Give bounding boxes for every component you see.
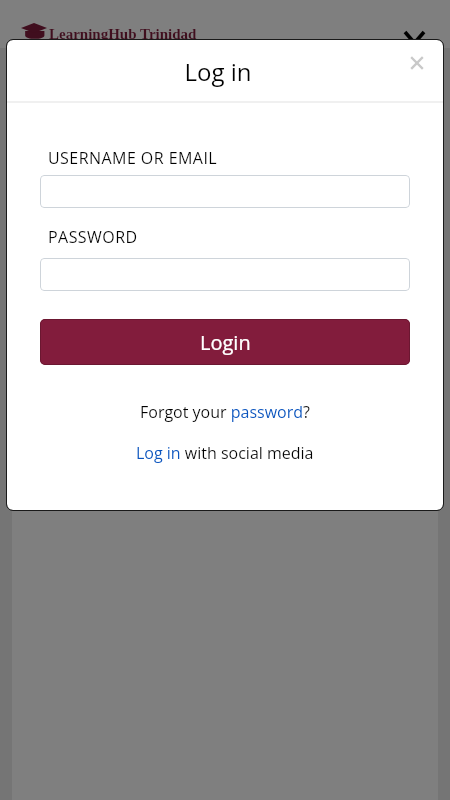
staticText: USERNAME OR EMAIL <box>48 147 218 169</box>
staticText: Log in <box>7 55 436 88</box>
staticText: LearningHub Trinidad <box>49 26 197 43</box>
button[interactable]: Close dialog <box>399 46 433 80</box>
button[interactable]: Toggle navigation menu <box>396 18 432 50</box>
staticText: Forgot your password? <box>140 401 310 423</box>
staticText: PASSWORD <box>48 226 138 248</box>
staticText: Login <box>200 329 251 356</box>
button[interactable] <box>40 175 410 208</box>
button[interactable]: Login <box>40 319 410 365</box>
button[interactable]: Forgot your password? <box>7 399 443 425</box>
button[interactable]: Log in with social media <box>7 440 443 466</box>
staticText: Log in with social media <box>136 442 314 464</box>
button[interactable] <box>40 258 410 291</box>
button[interactable]: LearningHub Trinidad <box>21 12 206 46</box>
